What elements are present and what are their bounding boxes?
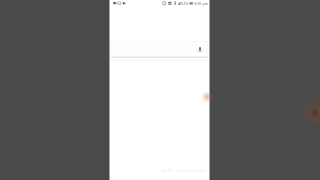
button[interactable]: Voice search — [195, 45, 205, 55]
button[interactable]: Compose — [201, 91, 213, 103]
staticText: 3:06 pm — [194, 1, 209, 6]
staticText: ● REC screen recorder — [162, 168, 207, 174]
staticText: 52% — [181, 1, 189, 6]
button[interactable]: Voice search — [111, 41, 208, 58]
